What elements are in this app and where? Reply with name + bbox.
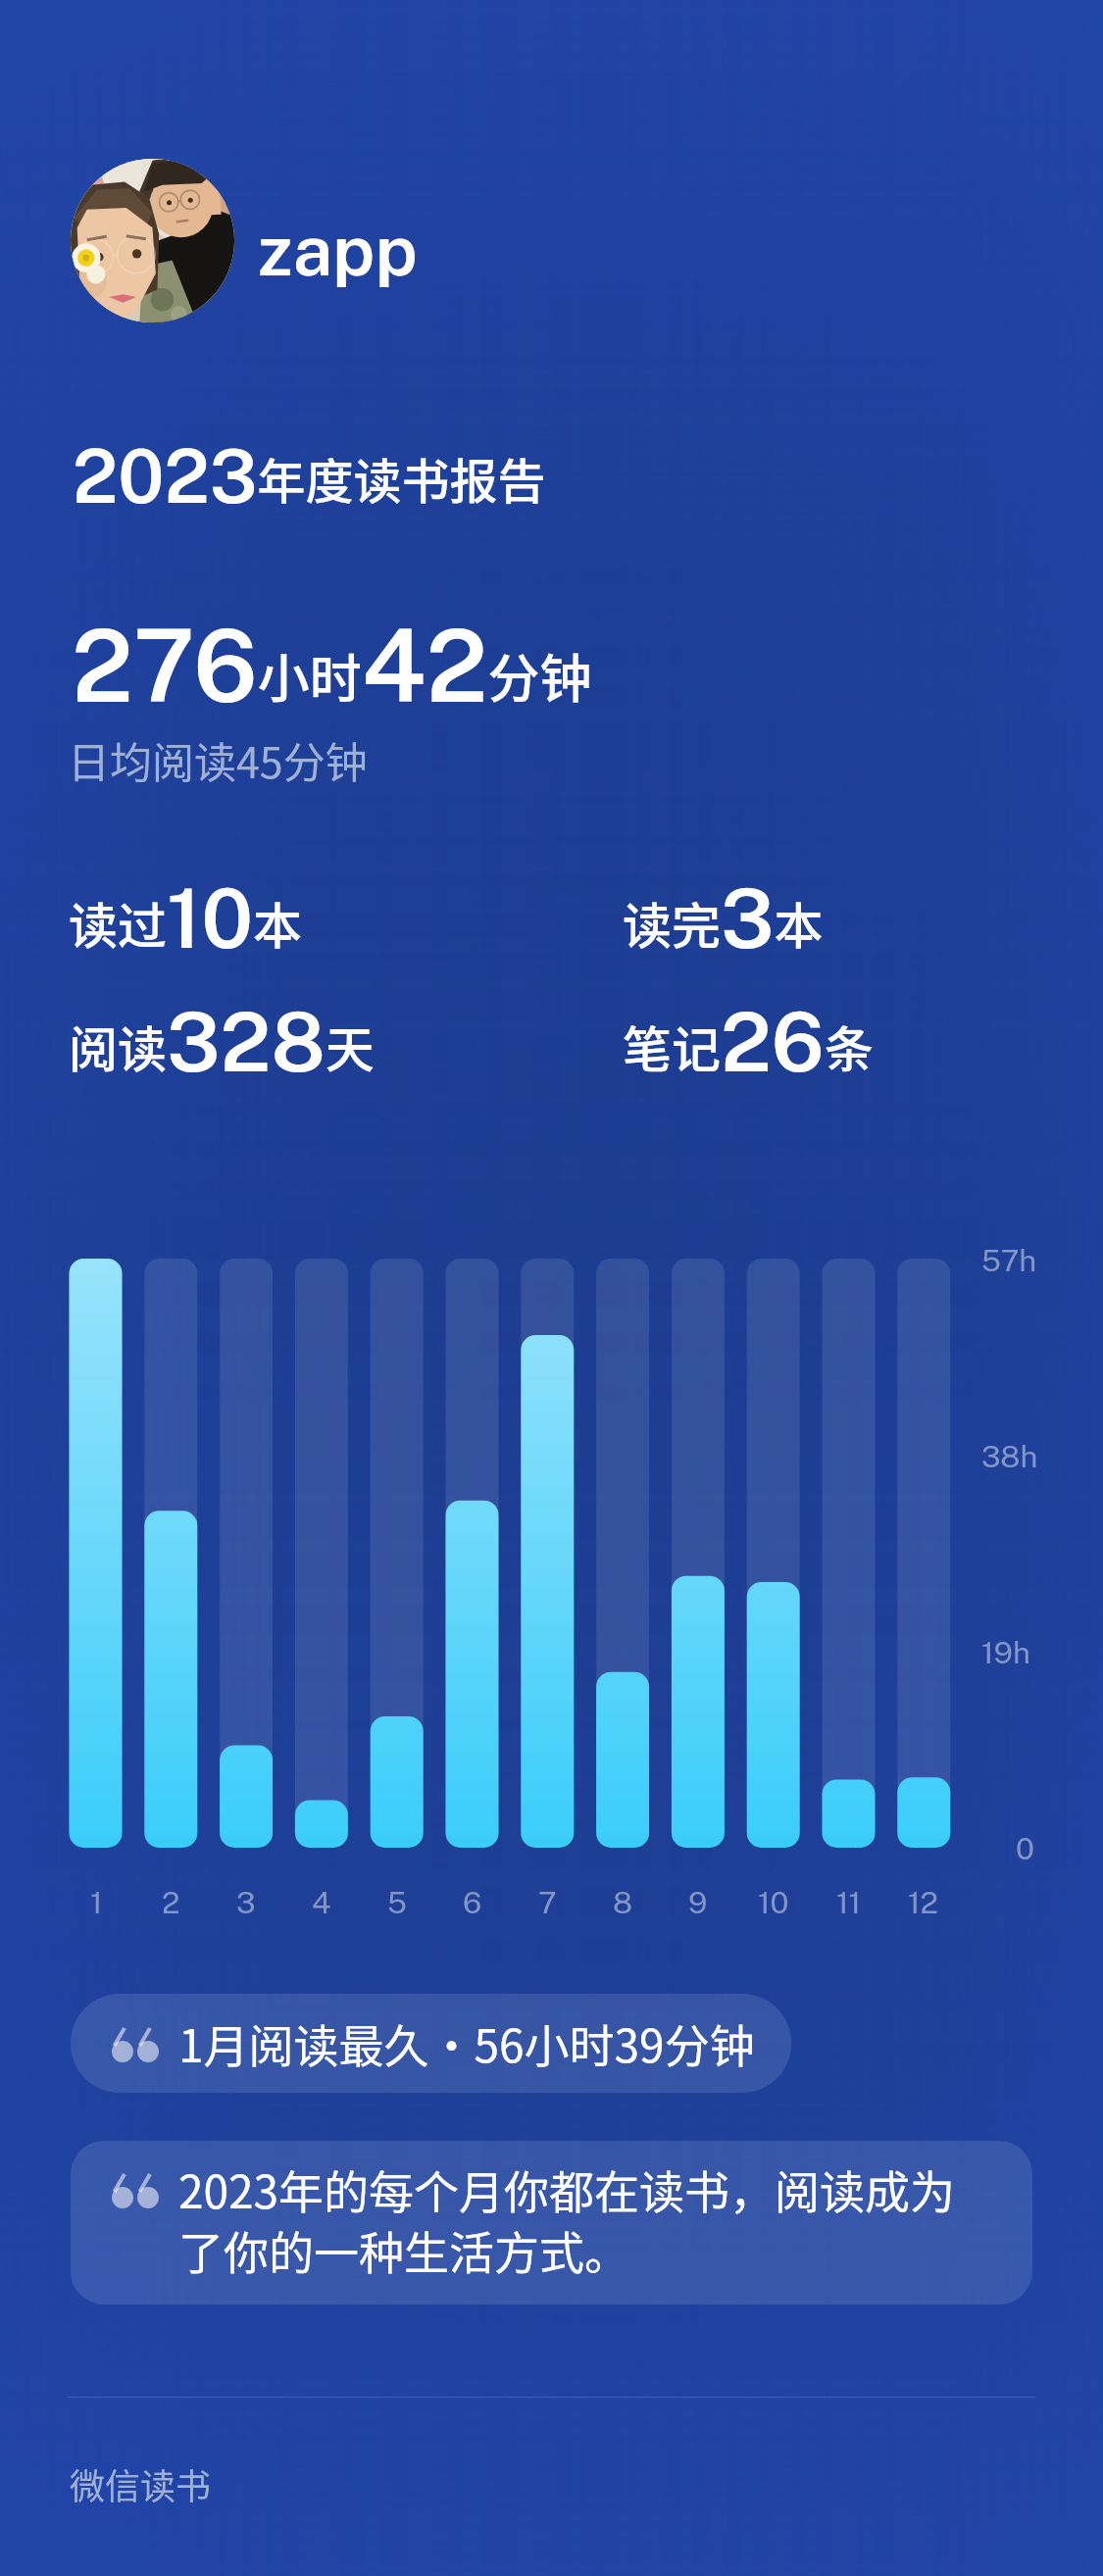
staticText: 微信读书: [70, 2458, 212, 2509]
staticText: 11: [836, 1885, 862, 1920]
staticText: 2023年度读书报告: [73, 433, 546, 520]
staticText: 1: [90, 1885, 103, 1920]
staticText: 8: [613, 1885, 633, 1920]
staticText: 9: [688, 1885, 708, 1920]
button[interactable]: 阅读328天: [69, 993, 375, 1090]
staticText: 2: [162, 1885, 180, 1920]
staticText: 5: [387, 1885, 407, 1920]
staticText: 4: [312, 1885, 331, 1920]
staticText: 日均阅读45分钟: [68, 729, 368, 790]
button[interactable]: 1月阅读最久·56小时39分钟: [71, 1994, 791, 2093]
staticText: 19h: [981, 1635, 1030, 1670]
staticText: zapp: [258, 209, 418, 292]
button[interactable]: Profile photo: [71, 159, 234, 322]
button[interactable]: 读过10本: [69, 869, 303, 966]
button[interactable]: 笔记26条: [623, 993, 874, 1090]
staticText: 3: [236, 1885, 256, 1920]
staticText: 57h: [981, 1243, 1037, 1278]
staticText: 2023年的每个月你都在读书，阅读成为了你的一种生活方式。: [178, 2159, 975, 2281]
staticText: 10: [758, 1885, 789, 1920]
staticText: 12: [908, 1885, 939, 1920]
button[interactable]: Profile photo: [71, 159, 428, 322]
staticText: 38h: [981, 1439, 1038, 1474]
staticText: 276小时42分钟: [72, 607, 592, 724]
button[interactable]: 读完3本: [623, 869, 824, 966]
staticText: 0: [1016, 1831, 1034, 1866]
staticText: 7: [538, 1885, 557, 1920]
staticText: 1月阅读最久·56小时39分钟: [178, 2013, 786, 2074]
button[interactable]: 2023年的每个月你都在读书，阅读成为了你的一种生活方式。: [71, 2141, 1032, 2304]
staticText: 6: [463, 1885, 482, 1920]
